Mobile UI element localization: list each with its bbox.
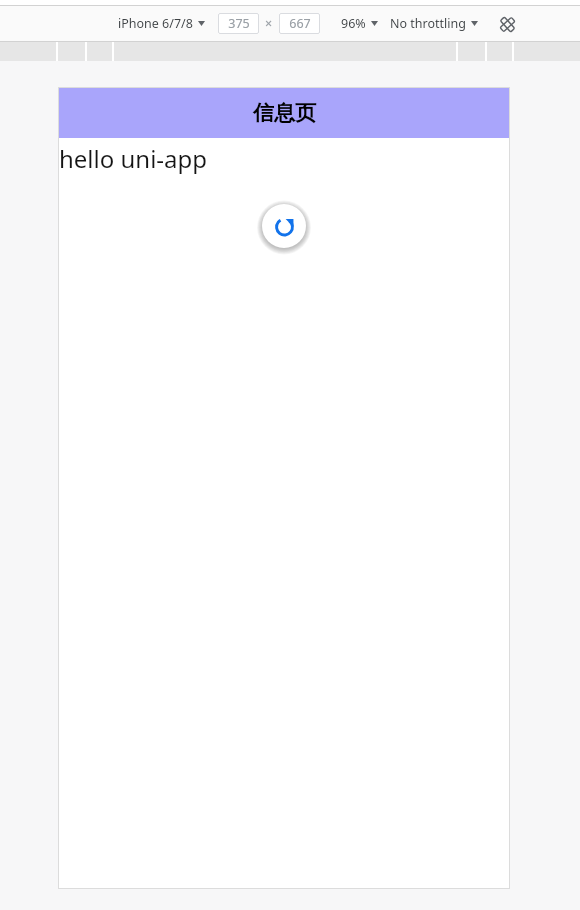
button[interactable]: No throttling bbox=[390, 15, 478, 32]
button[interactable]: 96% bbox=[341, 15, 378, 32]
button[interactable]: iPhone 6/7/8 bbox=[118, 15, 205, 32]
staticText: hello uni-app bbox=[59, 142, 208, 175]
staticText: 667 bbox=[289, 15, 311, 32]
staticText: 96% bbox=[341, 15, 366, 32]
button[interactable]: 375 bbox=[218, 13, 259, 34]
staticText: No throttling bbox=[390, 15, 466, 32]
button[interactable]: 信息页 bbox=[58, 87, 510, 138]
button[interactable]: Refresh bbox=[262, 204, 306, 248]
button[interactable]: Rotate device bbox=[495, 12, 519, 36]
staticText: 375 bbox=[228, 15, 250, 32]
staticText: 信息页 bbox=[253, 100, 316, 126]
button[interactable]: 667 bbox=[279, 13, 320, 34]
staticText: iPhone 6/7/8 bbox=[118, 15, 193, 32]
staticText: × bbox=[265, 15, 273, 32]
